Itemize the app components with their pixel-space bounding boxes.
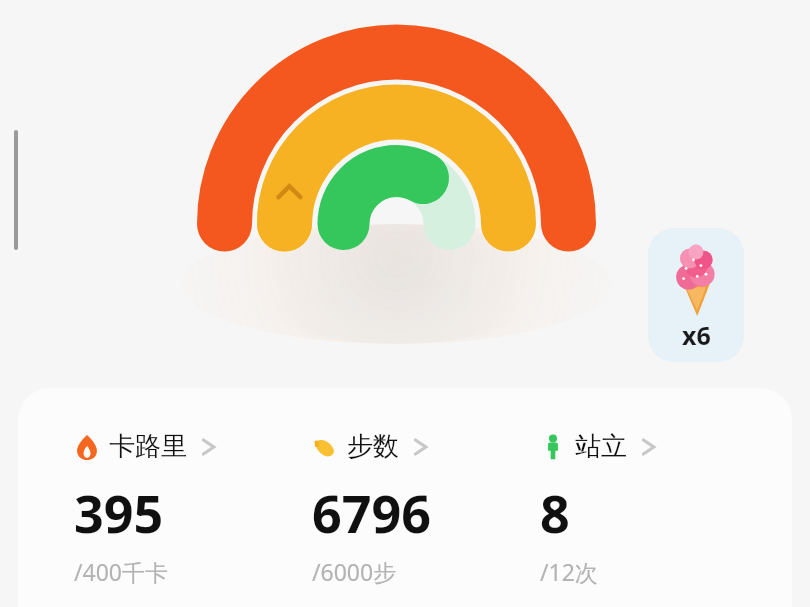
button[interactable]: 卡路里 <box>74 430 312 587</box>
other: 更多 <box>201 436 217 458</box>
staticText: x6 <box>682 318 711 352</box>
staticText: 6796 <box>312 477 431 548</box>
button[interactable]: 步数 <box>312 430 540 587</box>
staticText: 8 <box>540 477 570 548</box>
staticText: 卡路里 <box>109 430 187 463</box>
staticText: /6000步 <box>312 556 397 587</box>
button[interactable]: 站立 <box>540 430 740 587</box>
button[interactable]: x6 <box>648 228 744 362</box>
other: 更多 <box>413 436 429 458</box>
staticText: 步数 <box>347 430 399 463</box>
staticText: /400千卡 <box>74 556 169 587</box>
staticText: /12次 <box>540 556 598 587</box>
other: 更多 <box>641 436 657 458</box>
staticText: 站立 <box>575 430 627 463</box>
staticText: 395 <box>74 477 164 548</box>
